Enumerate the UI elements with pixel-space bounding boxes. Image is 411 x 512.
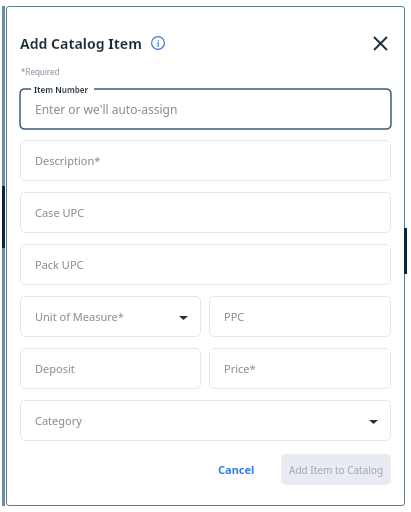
button[interactable]: Category xyxy=(20,400,391,441)
button[interactable]: Price* xyxy=(209,348,391,389)
staticText: Add Catalog Item xyxy=(20,34,142,53)
button[interactable]: Information xyxy=(148,33,168,53)
button[interactable]: Case UPC xyxy=(20,192,391,233)
staticText: Price* xyxy=(224,361,256,376)
staticText: *Required xyxy=(21,66,60,77)
staticText: Unit of Measure* xyxy=(35,309,124,324)
staticText: Cancel xyxy=(218,462,255,477)
button[interactable]: Pack UPC xyxy=(20,244,391,285)
button[interactable]: Close xyxy=(366,29,394,57)
button[interactable]: Unit of Measure* xyxy=(20,296,201,337)
button[interactable]: PPC xyxy=(209,296,391,337)
button[interactable]: Add Item to Catalog xyxy=(281,454,391,485)
staticText: Category xyxy=(35,413,82,428)
staticText: Case UPC xyxy=(35,205,85,220)
staticText: Enter or we'll auto-assign xyxy=(35,101,178,117)
staticText: i xyxy=(157,38,160,49)
staticText: Add Item to Catalog xyxy=(289,463,384,477)
button[interactable]: Deposit xyxy=(20,348,201,389)
staticText: Item Number xyxy=(34,84,89,95)
button[interactable]: Description* xyxy=(20,140,391,181)
staticText: PPC xyxy=(224,309,245,324)
staticText: Description* xyxy=(35,153,101,168)
staticText: Deposit xyxy=(35,361,75,376)
button[interactable]: Cancel xyxy=(206,454,267,485)
staticText: Pack UPC xyxy=(35,257,84,272)
